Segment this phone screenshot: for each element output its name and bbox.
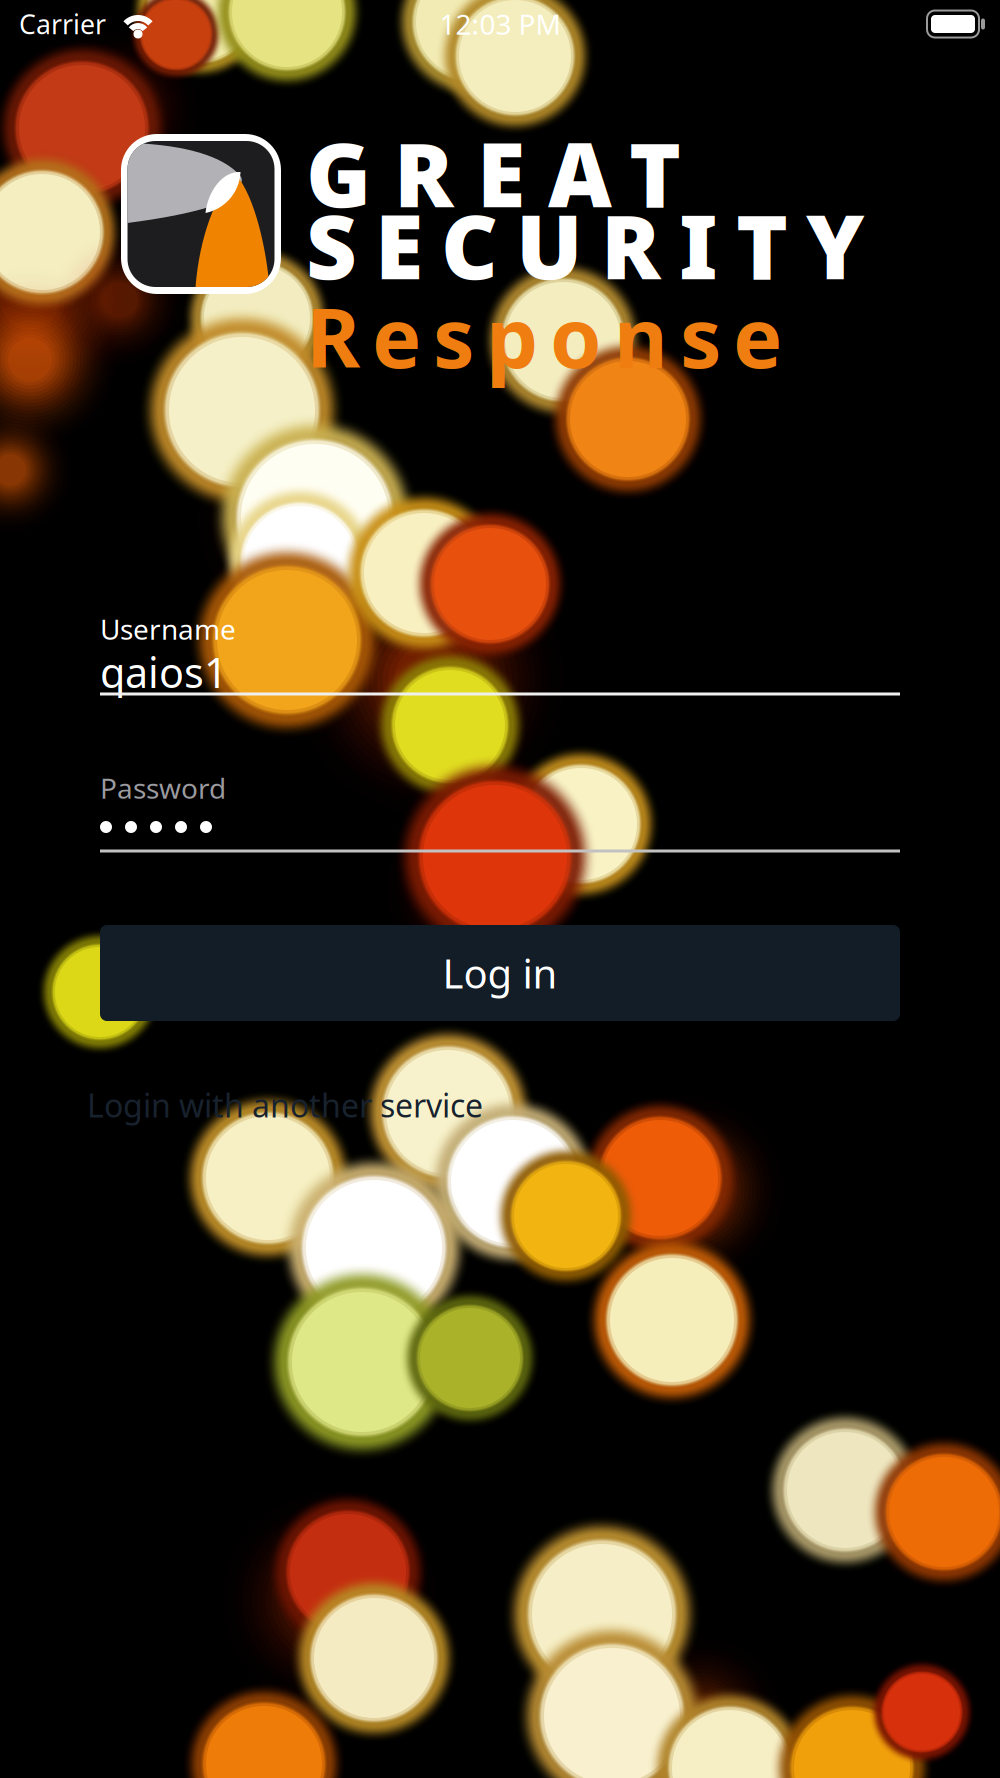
button[interactable]: Login with another service [87,1085,587,1125]
staticText: Response [306,281,782,391]
staticText: qaios1 [100,645,228,699]
staticText: Username [100,610,236,648]
staticText: GREAT [306,115,681,231]
button[interactable]: Log in [100,925,900,1021]
staticText: Login with another service [87,1084,483,1126]
staticText: SECURITY [306,187,864,303]
staticText: Carrier [19,6,106,42]
staticText: 12:03 PM [439,5,560,43]
staticText: Password [100,769,226,807]
staticText: Log in [442,946,557,999]
